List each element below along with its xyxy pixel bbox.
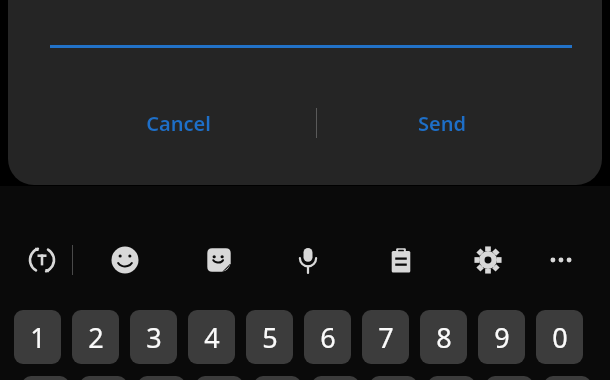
button[interactable]: Translate xyxy=(20,238,64,282)
button[interactable]: 9 xyxy=(478,310,525,364)
staticText: 5 xyxy=(262,319,278,356)
button[interactable]: 5 xyxy=(246,310,293,364)
staticText: 2 xyxy=(88,319,104,356)
button[interactable]: 2 xyxy=(72,310,119,364)
staticText: 7 xyxy=(378,319,394,356)
staticText: 4 xyxy=(204,319,220,356)
button[interactable]: 6 xyxy=(304,310,351,364)
button[interactable]: Clipboard xyxy=(379,238,423,282)
button[interactable]: 0 xyxy=(536,310,583,364)
button[interactable]: More options xyxy=(539,238,583,282)
button[interactable]: Settings xyxy=(466,238,510,282)
staticText: 6 xyxy=(320,319,336,356)
staticText: 1 xyxy=(30,319,46,356)
staticText: 3 xyxy=(146,319,162,356)
button[interactable]: Cancel xyxy=(98,100,258,146)
staticText: 8 xyxy=(436,319,452,356)
staticText: 0 xyxy=(552,319,568,356)
button[interactable]: Stickers xyxy=(197,238,241,282)
button[interactable]: 3 xyxy=(130,310,177,364)
staticText: 9 xyxy=(494,319,510,356)
button[interactable]: 1 xyxy=(14,310,61,364)
button[interactable]: 4 xyxy=(188,310,235,364)
button[interactable]: Emoji xyxy=(103,238,147,282)
staticText: Send xyxy=(418,110,466,137)
button[interactable]: 8 xyxy=(420,310,467,364)
staticText: Cancel xyxy=(146,110,211,137)
button[interactable]: 7 xyxy=(362,310,409,364)
button[interactable]: Voice input xyxy=(286,238,330,282)
button[interactable]: Send xyxy=(362,100,522,146)
